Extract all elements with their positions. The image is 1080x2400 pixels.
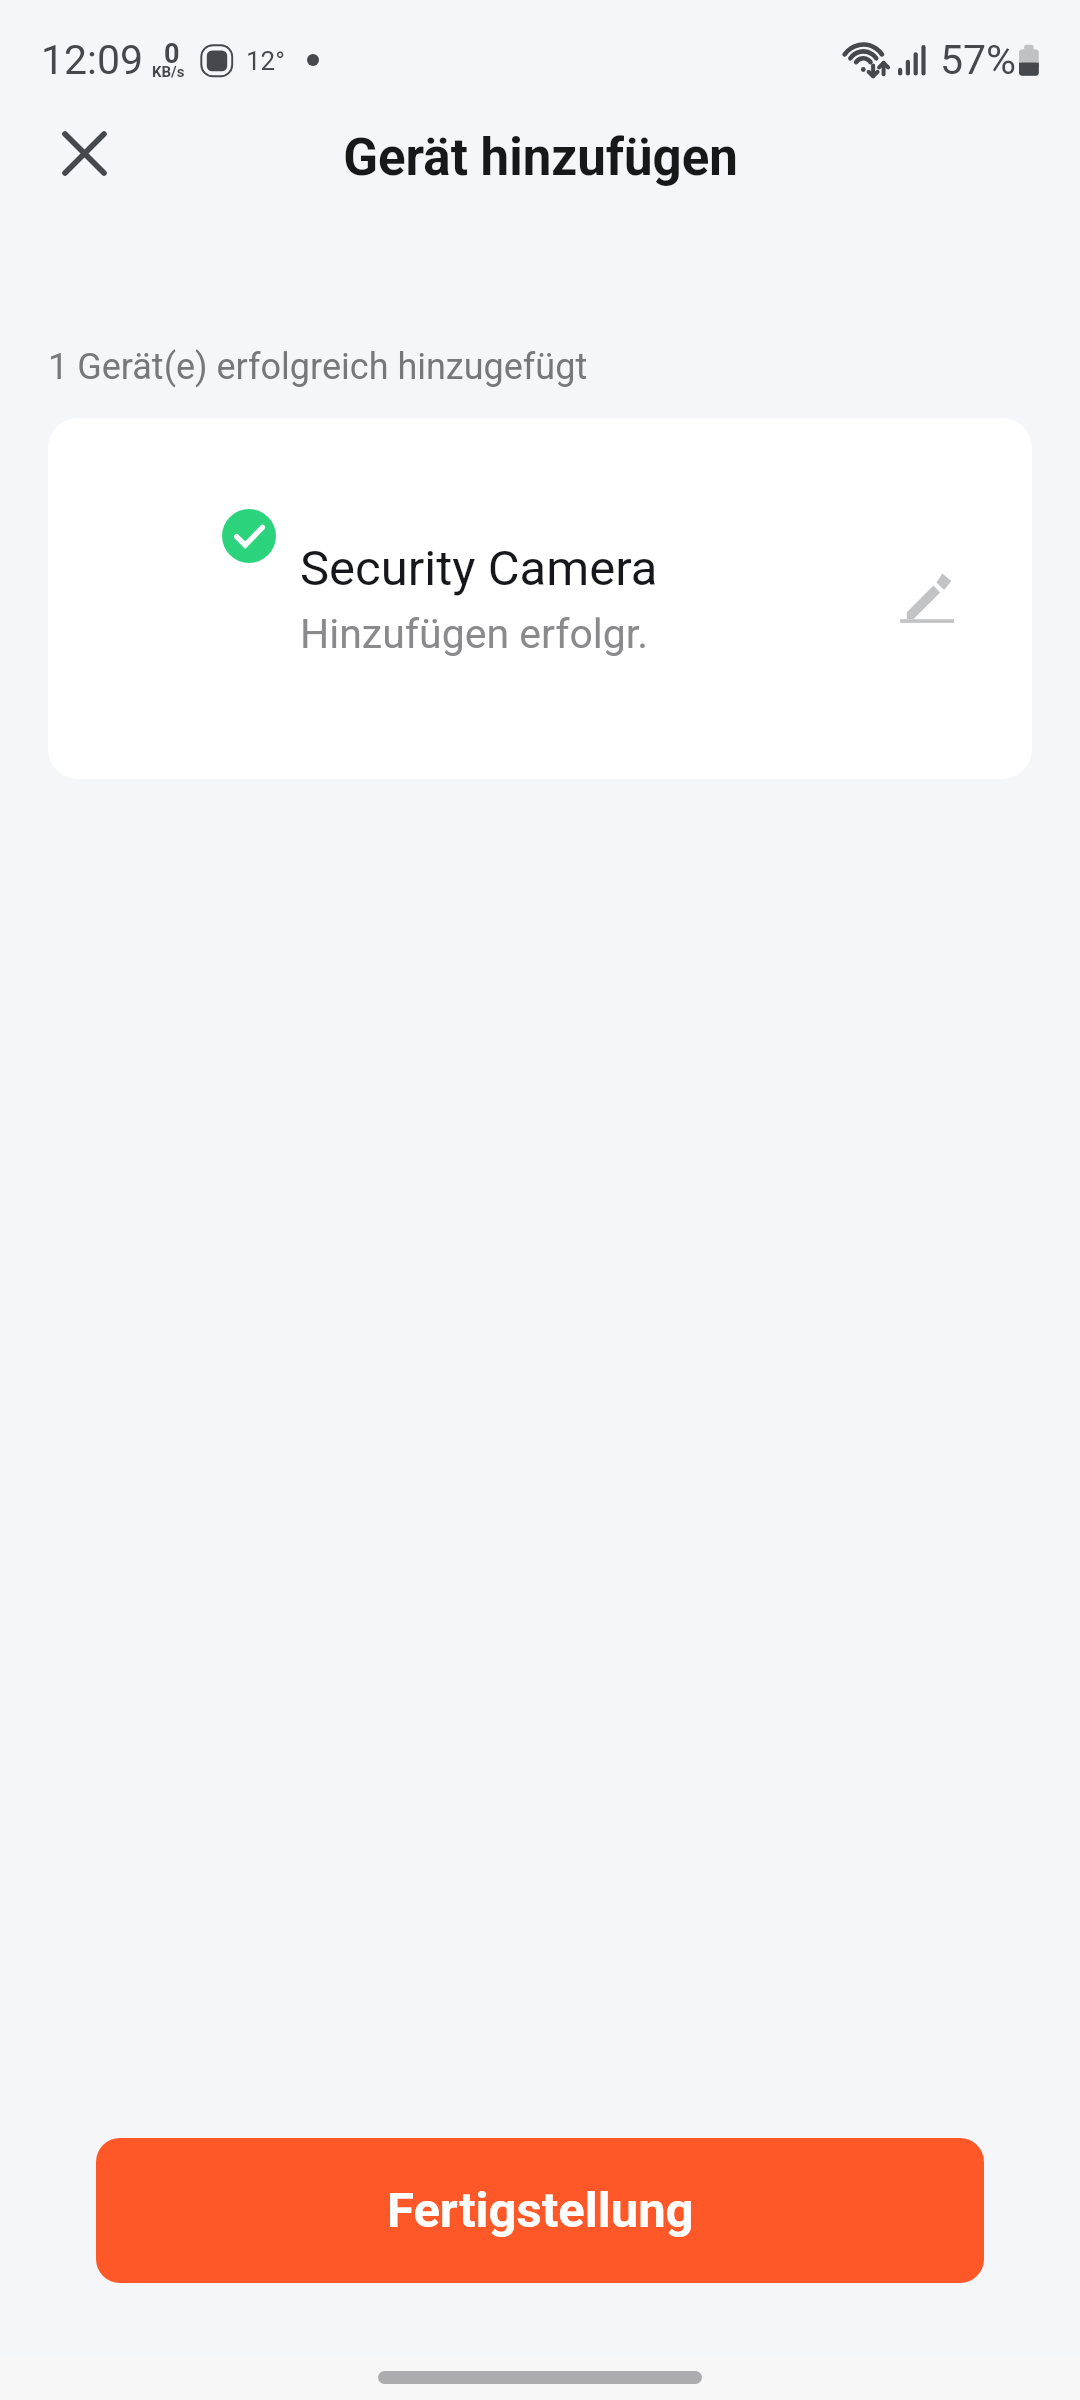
staticText: Security Camera — [300, 540, 658, 597]
staticText: Gerät hinzufügen — [343, 128, 738, 188]
button[interactable]: Rename device — [879, 549, 979, 649]
button[interactable]: Close — [38, 107, 130, 199]
staticText: 1 Gerät(e) erfolgreich hinzugefügt — [48, 346, 588, 388]
staticText: 0 — [164, 38, 180, 70]
button[interactable]: Security Camera — [48, 418, 1032, 779]
staticText: 12:09 — [41, 36, 144, 84]
staticText: Fertigstellung — [387, 2182, 694, 2239]
staticText: 57% — [940, 36, 1017, 84]
staticText: Hinzufügen erfolgr. — [300, 610, 649, 658]
button[interactable]: Fertigstellung — [96, 2138, 984, 2283]
staticText: 12° — [246, 46, 285, 76]
staticText: KB/s — [152, 63, 185, 81]
